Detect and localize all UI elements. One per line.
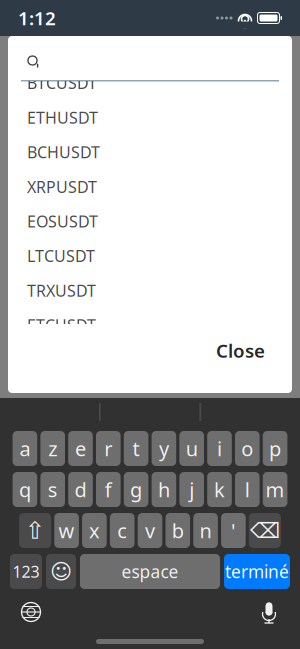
staticText: Close [216,338,265,363]
button[interactable]: c [110,513,134,548]
button[interactable]: e [68,431,93,466]
button[interactable]: p [263,431,287,466]
button[interactable]: Emoji [46,554,76,589]
staticText: ' [231,517,236,544]
button[interactable]: m [263,472,287,507]
staticText: ETHUSDT [27,107,98,128]
staticText: e [75,435,86,462]
staticText: ETCUSDT [27,314,96,336]
staticText: XRPUSDT [27,176,97,197]
button[interactable]: 123 [10,554,42,589]
button[interactable]: f [96,472,121,507]
button[interactable]: Close [210,332,271,369]
button[interactable]: Change keyboard [14,597,48,627]
button[interactable]: w [54,513,79,548]
button[interactable]: LTCUSDT [8,239,292,273]
button[interactable]: EOSUSDT [8,204,292,239]
button[interactable]: k [207,472,232,507]
button[interactable]: o [235,431,260,466]
staticText: TRXUSDT [27,280,96,301]
button[interactable]: x [82,513,107,548]
staticText: s [48,476,58,503]
staticText: u [186,435,198,462]
button[interactable]: q [13,472,37,507]
staticText: a [19,435,30,462]
button[interactable]: ' [221,513,246,548]
button[interactable]: BTCUSDT [8,66,292,100]
button[interactable]: r [96,431,121,466]
staticText: l [245,476,250,503]
button[interactable]: u [179,431,204,466]
button[interactable]: z [40,431,65,466]
staticText: t [133,435,140,462]
button[interactable]: TRXUSDT [8,273,292,308]
staticText: LTCUSDT [27,245,95,266]
staticText: x [89,517,100,544]
staticText: g [130,476,142,503]
staticText: d [74,476,86,503]
staticText: ⇧ [25,517,45,544]
button[interactable]: i [207,431,232,466]
button[interactable]: n [193,513,218,548]
staticText: n [200,517,212,544]
staticText: k [214,476,225,503]
staticText: terminé [225,560,289,583]
button[interactable]: ETHUSDT [8,100,292,135]
button[interactable]: b [165,513,190,548]
staticText: f [105,476,112,503]
staticText: espace [121,560,178,583]
button[interactable]: Shift [19,513,51,548]
button[interactable]: y [152,431,176,466]
staticText: z [48,435,57,462]
staticText: b [172,517,184,544]
button[interactable]: h [152,472,176,507]
button[interactable]: ETCUSDT [8,308,292,342]
button[interactable]: Dictation [252,597,286,627]
staticText: j [189,476,194,503]
button[interactable]: espace [80,554,220,589]
button[interactable]: t [124,431,148,466]
button[interactable]: l [235,472,260,507]
staticText: ⌫ [250,518,280,543]
button[interactable]: a [13,431,37,466]
button[interactable]: BCHUSDT [8,135,292,169]
staticText: c [117,517,127,544]
button[interactable]: XRPUSDT [8,169,292,204]
button[interactable]: terminé [224,554,290,589]
staticText: BTCUSDT [27,72,97,93]
button[interactable]: g [124,472,148,507]
staticText: r [104,435,112,462]
staticText: BCHUSDT [27,141,100,163]
staticText: w [59,517,75,544]
staticText: v [145,517,155,544]
button[interactable]: d [68,472,93,507]
staticText: ☺ [50,559,72,584]
button[interactable]: Delete [249,513,281,548]
staticText: h [158,476,170,503]
button[interactable]: v [138,513,162,548]
staticText: q [19,476,31,503]
staticText: EOSUSDT [27,211,98,232]
staticText: o [241,435,253,462]
staticText: p [269,435,281,462]
button[interactable]: s [40,472,65,507]
staticText: 123 [12,561,39,582]
staticText: m [266,476,285,503]
button[interactable]: j [179,472,204,507]
staticText: 1:12 [18,6,56,30]
staticText: i [217,435,222,462]
staticText: y [159,435,169,462]
